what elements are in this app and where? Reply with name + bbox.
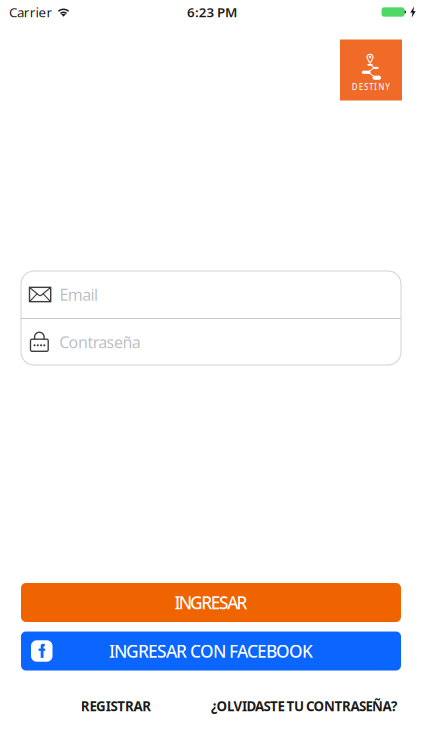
- button[interactable]: REGISTRAR: [46, 689, 186, 723]
- button[interactable]: Contraseña: [21, 319, 401, 365]
- staticText: DESTINY: [352, 82, 390, 92]
- staticText: Carrier: [9, 3, 52, 21]
- staticText: Email: [59, 284, 98, 305]
- button[interactable]: INGRESAR CON FACEBOOK: [21, 631, 401, 670]
- staticText: Contraseña: [59, 331, 141, 353]
- staticText: REGISTRAR: [81, 697, 151, 715]
- staticText: INGRESAR CON FACEBOOK: [109, 639, 313, 662]
- staticText: 6:23 PM: [187, 3, 237, 21]
- button[interactable]: INGRESAR: [21, 583, 401, 622]
- staticText: INGRESAR: [174, 591, 248, 614]
- button[interactable]: Email: [21, 271, 401, 318]
- staticText: ¿OLVIDASTE TU CONTRASEÑA?: [211, 697, 397, 715]
- button[interactable]: ¿OLVIDASTE TU CONTRASEÑA?: [199, 689, 409, 723]
